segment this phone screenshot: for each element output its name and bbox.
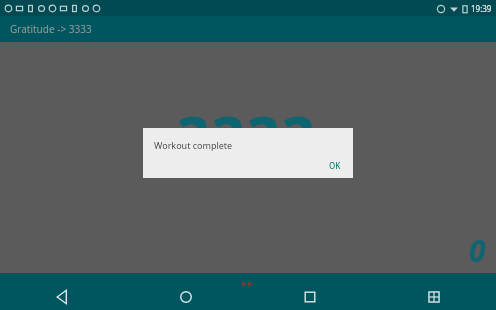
staticText: OK [329, 160, 341, 171]
button[interactable]: OK [323, 157, 347, 174]
staticText: 3 [207, 95, 242, 182]
button[interactable]: Switch keyboard [372, 284, 496, 310]
staticText: Gratitude -> 3333 [10, 22, 92, 36]
staticText: Workout complete [154, 139, 233, 151]
staticText: 3 [277, 95, 312, 182]
button[interactable]: Back [0, 284, 124, 310]
staticText: 3 [172, 95, 207, 182]
button[interactable]: Recents [248, 284, 372, 310]
staticText: 3 [242, 95, 277, 182]
staticText: 19:39 [471, 3, 492, 14]
staticText: 0 [469, 230, 486, 271]
button[interactable]: Home [124, 284, 248, 310]
